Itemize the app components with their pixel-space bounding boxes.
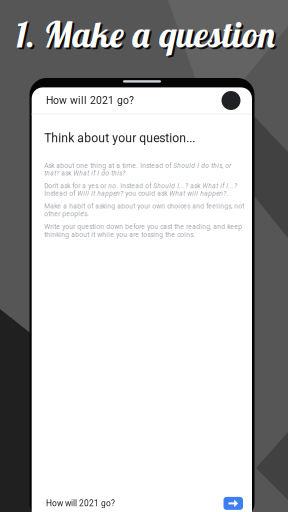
staticText: 1. Make a question [17,13,279,58]
staticText: Think about your question... [44,131,195,145]
staticText: Write your question down before you cast… [44,223,242,238]
staticText: Don't ask for a yes or no. Instead of Sh… [44,182,237,197]
staticText: Ask about one thing at a time. Instead o… [44,162,231,177]
staticText: 1. Make a question [15,11,277,56]
button[interactable]: Next [223,497,243,510]
staticText: How will 2021 go? [46,498,115,508]
button[interactable]: How will 2021 go? [32,87,252,114]
staticText: Make a habit of asking about your own ch… [44,202,244,218]
staticText: How will 2021 go? [46,94,134,107]
